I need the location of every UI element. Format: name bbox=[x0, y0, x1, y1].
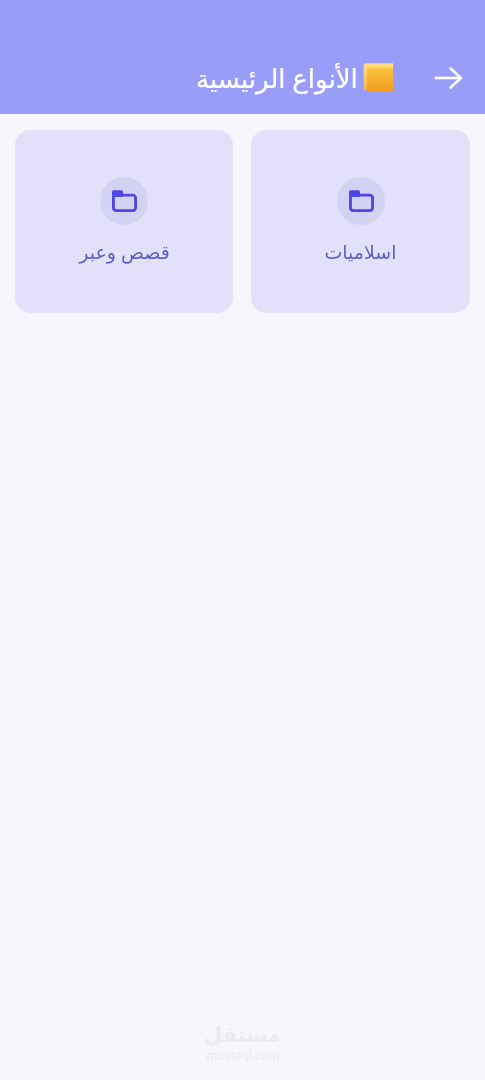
staticText: مستقل bbox=[204, 1023, 281, 1047]
button[interactable]: قصص وعبر bbox=[15, 130, 233, 313]
button[interactable]: Back bbox=[427, 57, 469, 99]
button[interactable]: اسلاميات bbox=[251, 130, 470, 313]
staticText: اسلاميات bbox=[324, 241, 397, 263]
staticText: mostaql.com bbox=[206, 1047, 280, 1063]
staticText: الأنواع الرئيسية bbox=[196, 60, 358, 95]
staticText: قصص وعبر bbox=[79, 239, 170, 265]
